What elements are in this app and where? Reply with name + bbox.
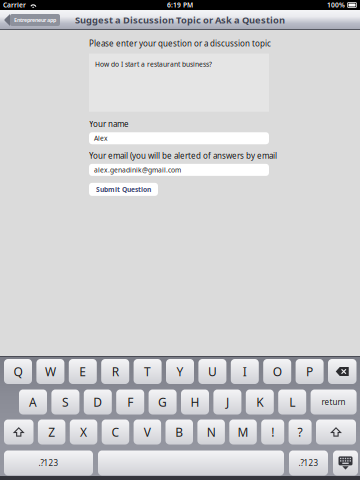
button[interactable]: V [134,419,161,444]
button[interactable]: E [69,359,97,384]
button[interactable]: C [102,419,129,444]
staticText: Y [176,363,183,379]
button[interactable]: Submit Question [89,183,158,196]
button[interactable]: S [51,389,79,414]
staticText: H [190,394,199,410]
staticText: U [208,363,217,379]
staticText: V [144,424,151,440]
staticText: Please enter your question or a discussi… [89,38,271,49]
staticText: 100% [327,1,345,9]
button[interactable]: D [84,389,112,414]
button[interactable]: Hide keyboard [333,450,358,475]
staticText: G [158,394,167,410]
staticText: B [175,424,183,440]
button[interactable]: U [198,359,226,384]
staticText: How do I start a restaurant business? [95,60,212,68]
staticText: X [80,424,87,440]
staticText: W [45,363,56,379]
staticText: Carrier [3,1,26,9]
button[interactable]: N [197,419,225,444]
button[interactable]: L [278,389,306,414]
staticText: .?123 [298,458,318,468]
staticText: S [62,394,69,410]
staticText: ? [298,424,303,440]
button[interactable]: ? [289,419,312,444]
staticText: Entrepreneur app [14,16,56,24]
button[interactable]: J [213,389,241,414]
staticText: alex.genadinik@gmail.com [94,165,181,174]
staticText: E [79,363,86,379]
button[interactable]: X [70,419,97,444]
button[interactable]: K [246,389,274,414]
button[interactable]: R [101,359,129,384]
button[interactable]: Z [38,419,65,444]
button[interactable]: Delete [328,359,356,384]
button[interactable]: O [263,359,291,384]
staticText: Alex [94,134,108,143]
button[interactable]: A [19,389,47,414]
staticText: .?123 [38,458,58,468]
button[interactable]: W [36,359,64,384]
staticText: I [243,363,247,379]
button[interactable]: G [149,389,177,414]
button[interactable] [98,450,284,475]
staticText: N [207,424,216,440]
button[interactable]: I [231,359,259,384]
button[interactable]: H [181,389,209,414]
staticText: D [93,394,102,410]
button[interactable]: .?123 [4,450,93,475]
staticText: return [322,397,346,407]
button[interactable]: Shift [316,419,356,444]
button[interactable]: T [134,359,162,384]
staticText: Your email (you will be alerted of answe… [89,150,277,161]
staticText: Your name [89,119,129,129]
button[interactable]: P [296,359,324,384]
button[interactable]: Shift [4,419,33,444]
staticText: Q [13,363,22,379]
staticText: T [144,363,151,379]
staticText: Z [48,424,55,440]
staticText: A [29,394,37,410]
staticText: M [238,424,249,440]
staticText: Submit Question [96,185,151,194]
button[interactable]: F [116,389,144,414]
button[interactable]: return [311,389,357,414]
button[interactable]: Y [166,359,194,384]
button[interactable]: M [229,419,257,444]
staticText: 6:19 PM [167,1,193,9]
button[interactable]: Q [4,359,32,384]
staticText: ! [271,424,274,440]
staticText: R [112,363,119,379]
button[interactable]: B [165,419,193,444]
staticText: F [127,394,133,410]
staticText: J [226,394,229,410]
button[interactable]: Entrepreneur app [4,14,60,26]
staticText: L [289,394,295,410]
button[interactable]: ! [261,419,284,444]
staticText: P [306,363,313,379]
staticText: K [256,394,263,410]
staticText: Suggest a Discussion Topic or Ask a Ques… [75,14,285,26]
staticText: O [273,363,282,379]
staticText: C [111,424,119,440]
button[interactable]: .?123 [289,450,328,475]
